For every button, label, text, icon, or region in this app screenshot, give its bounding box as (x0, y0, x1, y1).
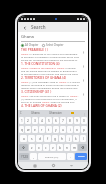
button[interactable]: w (25, 126, 31, 133)
staticText: i (70, 128, 71, 132)
button[interactable]: n (64, 144, 70, 151)
button[interactable]: Back (69, 163, 74, 168)
button[interactable]: 9 (74, 117, 80, 124)
button[interactable]: , (30, 153, 37, 160)
staticText: . (78, 94, 79, 97)
staticText: a (23, 137, 25, 141)
button[interactable]: Select Chapter (42, 43, 64, 47)
button[interactable]: t (46, 126, 52, 133)
button[interactable]: a (20, 135, 27, 142)
staticText: u (62, 128, 64, 132)
staticText: ?123 (21, 155, 28, 159)
staticText: z (31, 146, 33, 150)
button[interactable]: 8 (67, 117, 73, 124)
button[interactable]: 4 (39, 117, 45, 124)
button[interactable]: z (29, 144, 35, 151)
button[interactable]: b (57, 144, 63, 151)
staticText: All Chapter (25, 43, 39, 47)
staticText: Ghana (21, 80, 29, 83)
button[interactable]: Back (21, 24, 28, 31)
other: Expand (81, 78, 85, 82)
staticText: x (38, 146, 40, 150)
staticText: , (33, 155, 34, 159)
button[interactable]: h (59, 135, 65, 142)
staticText: e (34, 128, 36, 132)
staticText: Ghana (21, 66, 29, 69)
button[interactable]: r (39, 126, 45, 133)
button[interactable]: x (36, 144, 42, 151)
staticText: m (73, 146, 76, 150)
button[interactable]: Home (51, 163, 56, 168)
staticText: w (27, 128, 30, 132)
button[interactable]: v (50, 144, 56, 151)
button[interactable]: ?123 (19, 153, 29, 160)
staticText: 4 (41, 119, 43, 123)
staticText: is a unitary (67, 80, 80, 83)
staticText: Ghana (59, 80, 67, 83)
staticText: republic consisting of those territories… (21, 83, 80, 86)
staticText: j (69, 137, 70, 141)
staticText: 5 (48, 119, 50, 123)
button[interactable]: . (67, 153, 74, 160)
staticText: C (20, 111, 22, 115)
staticText: 9 (76, 119, 78, 123)
staticText: h (61, 137, 63, 141)
button[interactable]: ⋮ (83, 112, 86, 115)
button[interactable]: m (71, 144, 77, 151)
staticText: v (52, 146, 54, 150)
other: Expand (81, 64, 85, 68)
button[interactable]: q (19, 126, 24, 133)
button[interactable]: g (52, 135, 58, 142)
button[interactable]: All Chapter (21, 43, 39, 47)
staticText: y (55, 128, 57, 132)
button[interactable]: 1 (19, 117, 24, 124)
staticText: f (47, 137, 49, 141)
button[interactable]: u (60, 126, 66, 133)
button[interactable]: d (36, 135, 43, 142)
button[interactable]: Recents (32, 163, 37, 168)
staticText: o (76, 128, 78, 132)
button[interactable]: 6 (53, 117, 59, 124)
button[interactable]: 1. THE CONSTITUTION (4) (21, 62, 85, 75)
button[interactable]: 3. CITIZENSHIP (41 ) (21, 90, 85, 103)
staticText: Ghana (57, 66, 65, 69)
staticText: resides in the people of (29, 66, 57, 69)
staticText: k (75, 137, 77, 141)
button[interactable]: THE PREAMBLE ( ) (21, 48, 85, 61)
staticText: 7 (62, 119, 64, 123)
button[interactable]: 2 (25, 117, 31, 124)
staticText: 0 (83, 119, 85, 123)
button[interactable]: j (66, 135, 72, 142)
button[interactable]: f (44, 135, 51, 142)
button[interactable]: k (73, 135, 79, 142)
staticText: q (21, 128, 23, 132)
button[interactable]: 5 (46, 117, 52, 124)
button[interactable]: p (81, 126, 87, 133)
staticText: r (41, 128, 43, 132)
button[interactable]: o (74, 126, 80, 133)
button[interactable]: 0 (81, 117, 87, 124)
button[interactable]: 7 (60, 117, 66, 124)
staticText: 2. TERRITORIES OF GHANA (4) (21, 76, 66, 80)
button[interactable]: 3 (32, 117, 38, 124)
staticText: Ghana (21, 34, 34, 40)
button[interactable]: s (28, 135, 35, 142)
button[interactable]: e (32, 126, 38, 133)
button[interactable]: Ghanaian (49, 111, 62, 115)
button[interactable]: Ghana (31, 111, 40, 115)
button[interactable]: Search (75, 153, 87, 160)
button[interactable]: Space (38, 153, 66, 160)
button[interactable]: Backspace (78, 144, 87, 151)
button[interactable]: l (80, 135, 86, 142)
staticText: n (66, 146, 68, 150)
button[interactable]: c (43, 144, 49, 151)
staticText: THE PREAMBLE ( ) (21, 48, 48, 52)
staticText: Ghana (42, 100, 50, 103)
staticText: to establish a framework of government w… (21, 55, 80, 58)
button[interactable]: 2. TERRITORIES OF GHANA (4) (21, 76, 85, 89)
button[interactable]: Shift (19, 144, 28, 151)
staticText: . (70, 155, 71, 159)
button[interactable]: i (67, 126, 73, 133)
button[interactable]: y (53, 126, 59, 133)
staticText: (1) Subject to the provisions of this Co… (21, 97, 80, 100)
